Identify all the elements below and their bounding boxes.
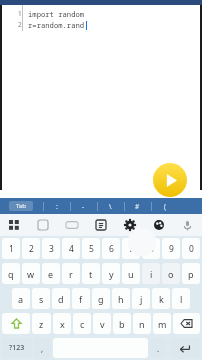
staticText: 7 [129, 243, 134, 255]
staticText: # [135, 202, 140, 211]
button[interactable]: 9 [162, 238, 180, 259]
button[interactable]: ( [151, 198, 178, 214]
staticText: - [82, 202, 85, 211]
button[interactable]: w [22, 263, 40, 284]
staticText: r [69, 268, 73, 280]
button[interactable]: 0 [182, 238, 200, 259]
staticText: d [58, 293, 64, 305]
staticText: j [140, 293, 143, 305]
button[interactable]: Tab [9, 201, 33, 211]
button[interactable]: r [62, 263, 80, 284]
button[interactable]: q [2, 263, 20, 284]
staticText: o [168, 268, 174, 280]
button[interactable]: Voice input [173, 214, 202, 236]
button[interactable]: f [72, 288, 90, 309]
button[interactable]: c [73, 313, 91, 334]
button[interactable]: m [153, 313, 171, 334]
button[interactable]: Settings [115, 214, 144, 236]
staticText: h [118, 293, 124, 305]
button[interactable]: 3 [42, 238, 60, 259]
staticText: Tab [16, 202, 26, 210]
button[interactable]: k [152, 288, 170, 309]
staticText: r=random.rand [28, 20, 85, 30]
staticText: x [60, 318, 65, 330]
staticText: i [150, 268, 153, 280]
button[interactable]: o [162, 263, 180, 284]
button[interactable]: Apps [0, 214, 28, 236]
button[interactable]: p [182, 263, 200, 284]
staticText: 2 [29, 243, 34, 255]
button[interactable]: d [52, 288, 70, 309]
button[interactable]: b [113, 313, 131, 334]
button[interactable]: - [70, 198, 97, 214]
staticText: l [180, 293, 183, 305]
button[interactable]: 2 [22, 238, 40, 259]
button[interactable]: GIF [57, 214, 86, 236]
button[interactable]: Period [150, 338, 167, 358]
button[interactable]: t [82, 263, 100, 284]
button[interactable]: 6 [102, 238, 120, 259]
staticText: p [188, 268, 194, 280]
button[interactable]: v [93, 313, 111, 334]
staticText: b [119, 318, 125, 330]
button[interactable]: Backspace [173, 313, 200, 334]
button[interactable]: h [112, 288, 130, 309]
staticText: g [98, 293, 104, 305]
button[interactable]: # [124, 198, 151, 214]
staticText: ( [164, 202, 166, 211]
button[interactable]: 8 [142, 238, 160, 259]
staticText: 4 [69, 243, 74, 255]
button[interactable]: z [32, 313, 51, 334]
button[interactable]: : [43, 198, 70, 214]
button[interactable]: u [122, 263, 140, 284]
staticText: z [39, 318, 44, 330]
staticText: y [109, 268, 114, 280]
button[interactable]: ?123 [2, 338, 32, 358]
staticText: c [80, 318, 85, 330]
button[interactable]: 4 [62, 238, 80, 259]
button[interactable]: 7 [122, 238, 140, 259]
staticText: import random [28, 9, 85, 19]
staticText: s [39, 293, 44, 305]
button[interactable]: a [12, 288, 30, 309]
button[interactable]: g [92, 288, 110, 309]
button[interactable]: Stickers [28, 214, 57, 236]
staticText: 5 [89, 243, 94, 255]
button[interactable]: x [53, 313, 71, 334]
button[interactable]: Enter [169, 338, 200, 358]
button[interactable]: Themes [144, 214, 173, 236]
staticText: 3 [49, 243, 54, 255]
button[interactable]: Run [153, 163, 187, 197]
button[interactable]: l [172, 288, 190, 309]
button[interactable]: i [142, 263, 160, 284]
staticText: w [27, 268, 35, 280]
staticText: 8 [149, 243, 154, 255]
button[interactable]: y [102, 263, 120, 284]
staticText: e [48, 268, 54, 280]
button[interactable]: 1 [2, 238, 20, 259]
staticText: : [56, 202, 58, 211]
staticText: 1 [18, 9, 22, 18]
button[interactable]: Shift [2, 313, 30, 334]
staticText: f [79, 293, 83, 305]
staticText: \ [109, 202, 112, 211]
button[interactable]: \ [97, 198, 124, 214]
button[interactable]: Clipboard [86, 214, 115, 236]
staticText: 1 [9, 243, 14, 255]
staticText: a [18, 293, 24, 305]
staticText: . [157, 343, 160, 354]
staticText: 9 [169, 243, 174, 255]
button[interactable]: e [42, 263, 60, 284]
button[interactable]: Comma [34, 338, 51, 358]
staticText: , [41, 343, 44, 354]
button[interactable]: n [133, 313, 151, 334]
button[interactable]: 5 [82, 238, 100, 259]
button[interactable]: s [32, 288, 50, 309]
staticText: u [128, 268, 134, 280]
button[interactable]: j [132, 288, 150, 309]
staticText: t [89, 268, 93, 280]
staticText: k [159, 293, 164, 305]
staticText: m [158, 318, 167, 330]
staticText: 2 [18, 20, 22, 29]
